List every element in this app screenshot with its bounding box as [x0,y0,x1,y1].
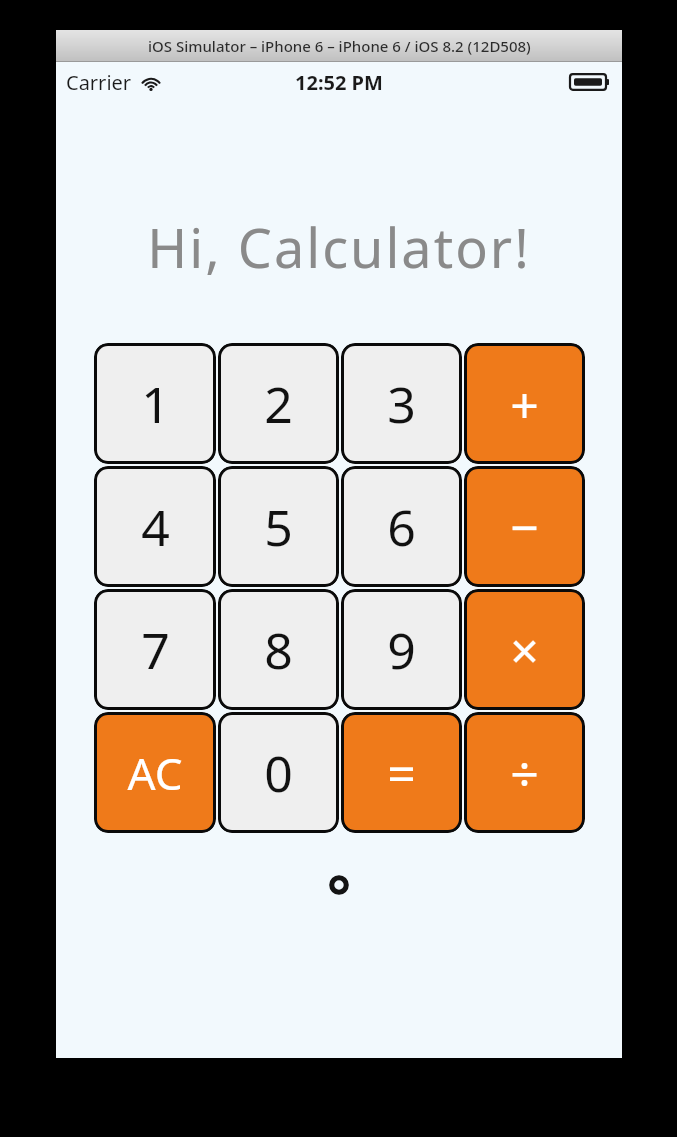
staticText: iOS Simulator – iPhone 6 – iPhone 6 / iO… [148,36,531,56]
button[interactable]: 0 [218,712,339,833]
button[interactable]: + [464,343,585,464]
staticText: × [510,616,539,684]
staticText: 2 [264,370,293,438]
staticText: 8 [264,616,293,684]
button[interactable]: 4 [94,466,216,587]
staticText: Carrier [66,69,132,96]
button[interactable]: AC [94,712,216,833]
staticText: AC [127,743,183,803]
button[interactable]: 8 [218,589,339,710]
button[interactable]: 7 [94,589,216,710]
button[interactable]: 6 [341,466,462,587]
staticText: + [510,370,539,438]
staticText: 1 [141,370,170,438]
staticText: 6 [387,493,416,561]
staticText: 0 [264,739,293,807]
staticText: 5 [264,493,293,561]
button[interactable]: 9 [341,589,462,710]
staticText: Hi, Calculator! [147,210,531,284]
button[interactable]: 3 [341,343,462,464]
staticText: 7 [141,616,170,684]
button[interactable]: − [464,466,585,587]
staticText: = [387,739,416,807]
staticText: − [510,493,539,561]
button[interactable]: ÷ [464,712,585,833]
staticText: 12:52 PM [295,69,383,96]
staticText: 3 [387,370,416,438]
button[interactable]: 1 [94,343,216,464]
button[interactable]: = [341,712,462,833]
button[interactable]: 2 [218,343,339,464]
button[interactable]: 5 [218,466,339,587]
staticText: 9 [387,616,416,684]
staticText: ÷ [510,739,539,807]
button[interactable]: × [464,589,585,710]
staticText: 4 [141,493,170,561]
